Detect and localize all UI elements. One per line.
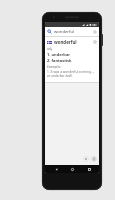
staticText: en underbar kväll. [47,74,73,78]
other: Language flag [47,41,52,44]
staticText: 2. fantastisk [47,58,72,63]
staticText: 1. It was a wonderful evening. – Det var [47,70,97,74]
button[interactable]: Copy [91,156,97,162]
button[interactable]: Add to favourites [93,40,97,44]
staticText: wonderful [54,29,93,35]
button[interactable]: Language flag [45,37,99,82]
button[interactable]: Recent apps [83,165,95,173]
button[interactable]: Search [45,27,99,36]
button[interactable]: Home [66,165,78,173]
staticText: 1. underbar [47,52,71,57]
staticText: Examples: [47,65,62,69]
button[interactable]: Clear search [93,30,97,34]
staticText: adj. [47,46,53,50]
button[interactable]: Listen [83,156,89,162]
button[interactable]: Back [50,165,62,173]
other: Search [47,29,52,34]
staticText: wonderful [54,39,93,45]
